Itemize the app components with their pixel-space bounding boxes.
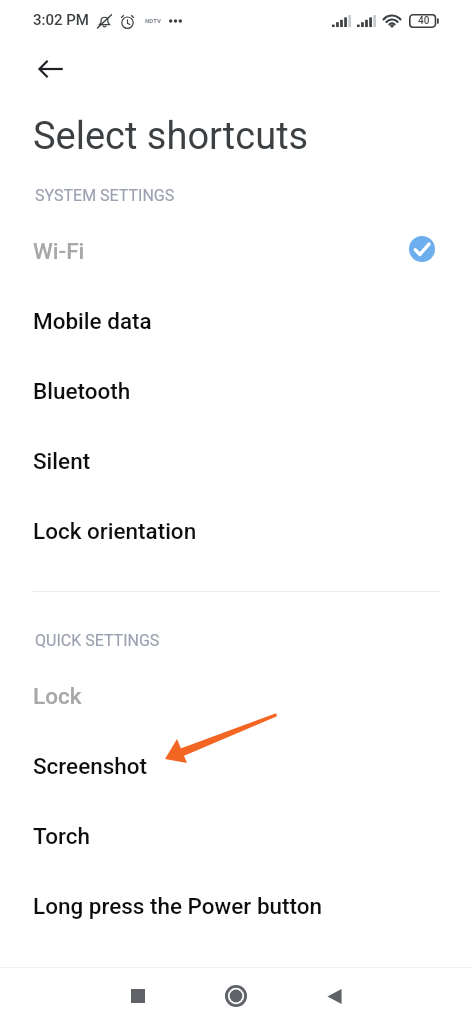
button[interactable]: Long press the Power button [0,871,472,941]
staticText: Mobile data [33,308,152,334]
button[interactable]: Silent [0,426,472,496]
staticText: NDTV [145,17,162,24]
button[interactable]: Lock orientation [0,496,472,566]
button[interactable]: Recent apps [89,968,187,1024]
button[interactable]: Bluetooth [0,356,472,426]
button[interactable]: Wi-Fi [0,216,472,286]
button[interactable]: Home [187,968,285,1024]
button[interactable]: Lock [0,661,472,731]
staticText: Select shortcuts [33,114,309,159]
staticText: Lock [33,683,82,709]
button[interactable]: Screenshot [0,731,472,801]
staticText: Torch [33,823,90,849]
staticText: 3:02 PM [33,11,89,29]
staticText: Silent [33,448,91,474]
staticText: Wi-Fi [33,238,85,264]
button[interactable]: Torch [0,801,472,871]
button[interactable]: Back [285,968,383,1024]
staticText: SYSTEM SETTINGS [35,186,175,205]
staticText: Bluetooth [33,378,131,404]
staticText: QUICK SETTINGS [35,631,160,650]
staticText: Long press the Power button [33,893,323,919]
staticText: Lock orientation [33,518,197,544]
staticText: Screenshot [33,753,148,779]
button[interactable]: Back [27,45,75,93]
staticText: 40 [418,15,430,27]
button[interactable]: Mobile data [0,286,472,356]
